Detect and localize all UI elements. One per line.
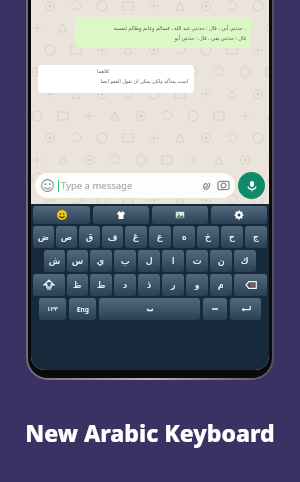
staticText: غ xyxy=(133,232,139,242)
staticText: ق xyxy=(86,232,93,242)
button[interactable]: Voice message xyxy=(238,172,265,199)
button[interactable]: م xyxy=(210,274,232,296)
button[interactable]: ل xyxy=(138,250,160,272)
button[interactable]: ح xyxy=(221,226,243,248)
staticText: قال : حدثني بقي ، قال : حدثني أبو xyxy=(174,34,246,41)
staticText: م xyxy=(218,280,224,290)
button[interactable]: خ xyxy=(197,226,219,248)
button[interactable]: Space xyxy=(99,298,200,320)
button[interactable]: Stickers xyxy=(152,206,208,224)
staticText: ع xyxy=(157,232,163,242)
staticText: Eng xyxy=(77,305,89,314)
button[interactable]: ن xyxy=(210,250,232,272)
staticText: ن xyxy=(218,256,225,266)
button[interactable]: Backspace xyxy=(234,274,267,296)
staticText: ج xyxy=(253,232,259,242)
button[interactable]: Emoji xyxy=(35,173,235,198)
staticText: ر xyxy=(171,280,176,290)
button[interactable]: ذ xyxy=(138,274,160,296)
other: Attach xyxy=(200,180,212,192)
button[interactable]: Dash xyxy=(203,298,227,320)
staticText: ش xyxy=(49,256,60,266)
button[interactable]: Settings xyxy=(211,206,267,224)
staticText: د xyxy=(123,280,128,290)
button[interactable]: غ xyxy=(125,226,147,248)
button[interactable]: ١٢٣ xyxy=(39,298,66,320)
staticText: ض xyxy=(38,232,49,242)
staticText: ت xyxy=(193,256,202,266)
button[interactable]: ض xyxy=(33,226,54,248)
other: Camera xyxy=(218,180,229,191)
button[interactable]: Enter xyxy=(230,298,261,320)
button[interactable]: ي xyxy=(90,250,112,272)
staticText: ظ xyxy=(73,280,82,290)
staticText: و xyxy=(195,280,200,290)
button[interactable]: ع xyxy=(149,226,171,248)
staticText: ل xyxy=(146,256,153,266)
staticText: حدثني أبي ، قال : حدثني عبد الله ، فسالم… xyxy=(113,24,246,31)
button[interactable]: Theme xyxy=(93,206,149,224)
button[interactable]: ه xyxy=(173,226,195,248)
staticText: خ xyxy=(205,232,211,242)
staticText: ١٢٣ xyxy=(47,305,58,313)
staticText: است بمتأكد ولكن يمكن ان تقول العفو ايضا xyxy=(100,78,188,85)
staticText: ب xyxy=(121,256,130,266)
button[interactable]: و xyxy=(186,274,208,296)
staticText: ي xyxy=(97,256,105,266)
button[interactable]: Emoji xyxy=(33,206,90,224)
button[interactable]: ا xyxy=(162,250,184,272)
button[interactable]: ك xyxy=(234,250,256,272)
button[interactable]: ج xyxy=(245,226,267,248)
staticText: Type a message xyxy=(61,179,133,192)
staticText: ح xyxy=(229,232,235,242)
button[interactable]: ت xyxy=(186,250,208,272)
button[interactable]: ش xyxy=(44,250,65,272)
staticText: ص xyxy=(61,232,72,242)
button[interactable]: حدثني أبي ، قال : حدثني عبد الله ، فسالم… xyxy=(75,17,251,48)
button[interactable]: Eng xyxy=(69,298,96,320)
button[interactable]: ق xyxy=(79,226,100,248)
staticText: كلاهما xyxy=(97,68,110,74)
button[interactable]: ر xyxy=(162,274,184,296)
staticText: ف xyxy=(108,232,118,242)
button[interactable]: ط xyxy=(90,274,112,296)
staticText: ا xyxy=(172,256,175,266)
staticText: New Arabic Keyboard xyxy=(25,417,275,448)
button[interactable]: Shift xyxy=(33,274,65,296)
button[interactable]: ف xyxy=(102,226,123,248)
button[interactable]: ص xyxy=(56,226,77,248)
staticText: ه xyxy=(182,232,187,242)
button[interactable]: كلاهما xyxy=(38,65,194,93)
staticText: ك xyxy=(241,256,249,266)
staticText: ط xyxy=(97,280,106,290)
staticText: ذ xyxy=(147,280,152,290)
button[interactable]: د xyxy=(114,274,136,296)
other: Emoji xyxy=(41,179,54,192)
button[interactable]: ظ xyxy=(67,274,88,296)
staticText: س xyxy=(72,256,83,266)
button[interactable]: س xyxy=(67,250,88,272)
button[interactable]: ب xyxy=(114,250,136,272)
